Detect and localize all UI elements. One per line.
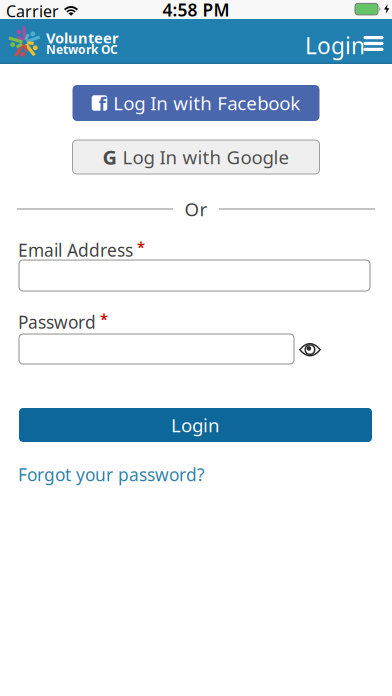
staticText: Login — [171, 413, 220, 437]
staticText: Forgot your password? — [18, 463, 205, 486]
staticText: Log In with Facebook — [113, 91, 300, 115]
staticText: Login — [305, 30, 365, 61]
staticText: Network OC — [46, 41, 118, 57]
staticText: Or — [184, 197, 207, 221]
staticText: f — [98, 92, 105, 117]
staticText: Email Address — [18, 238, 133, 261]
staticText: * — [100, 309, 108, 328]
staticText: G — [102, 144, 116, 170]
staticText: Carrier — [6, 0, 59, 22]
staticText: Password — [18, 310, 96, 333]
staticText: Log In with Google — [122, 145, 289, 169]
staticText: 4:58 PM — [162, 0, 229, 21]
staticText: * — [137, 237, 145, 256]
staticText: Volunteer — [46, 28, 119, 47]
